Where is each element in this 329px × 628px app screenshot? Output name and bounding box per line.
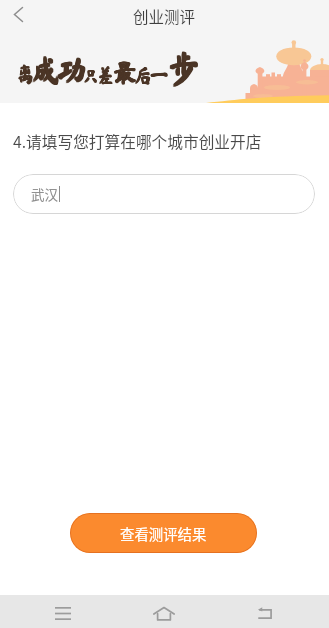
staticText: 武汉: [31, 184, 58, 204]
staticText: 创业测评: [133, 5, 196, 27]
button[interactable]: 武汉: [13, 174, 315, 214]
button[interactable]: Back: [247, 595, 283, 628]
staticText: 查看测评结果: [120, 523, 207, 544]
staticText: 4.请填写您打算在哪个城市创业开店: [13, 130, 262, 153]
button[interactable]: Recent apps: [45, 595, 81, 628]
button[interactable]: 查看测评结果: [70, 513, 257, 553]
button[interactable]: Back: [2, 0, 34, 28]
button[interactable]: Home: [146, 595, 182, 628]
